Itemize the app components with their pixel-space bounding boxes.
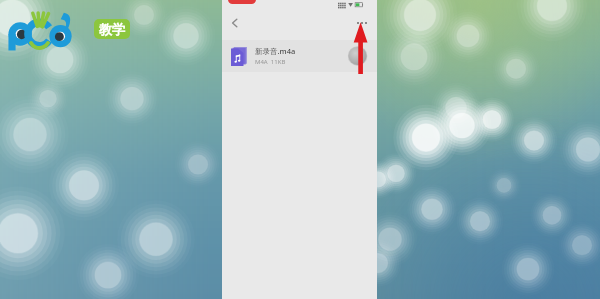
button[interactable]: More options [353, 14, 371, 32]
button[interactable]: Back [226, 14, 244, 32]
button[interactable]: 新录音.m4a [222, 40, 377, 72]
staticText: 新录音.m4a [255, 46, 296, 56]
staticText: M4A 11KB [255, 58, 286, 66]
staticText: 教学 [99, 21, 125, 37]
